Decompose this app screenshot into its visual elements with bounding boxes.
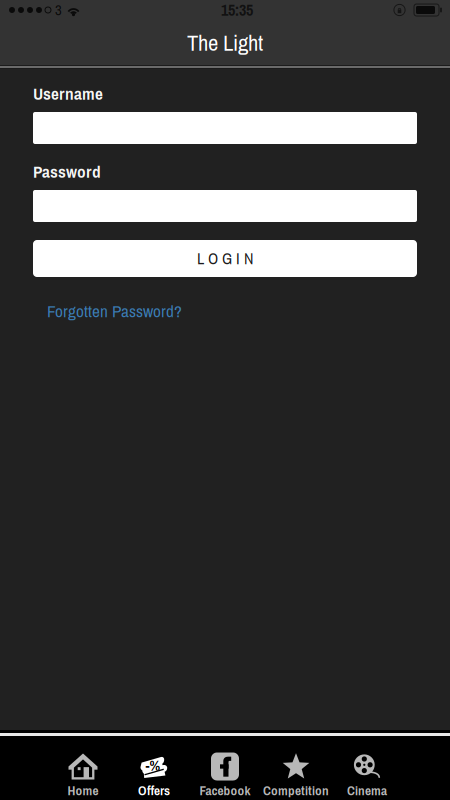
button[interactable]: Competition: [260, 736, 331, 800]
staticText: Username: [33, 82, 103, 105]
button[interactable]: Home: [47, 736, 118, 800]
staticText: Competition: [263, 781, 329, 799]
button[interactable]: Cinema: [331, 736, 402, 800]
staticText: Offers: [138, 781, 170, 799]
staticText: Forgotten Password?: [47, 299, 182, 323]
button[interactable]: Facebook: [189, 736, 260, 800]
staticText: Facebook: [199, 781, 250, 799]
staticText: The Light: [187, 27, 263, 58]
staticText: -%: [145, 756, 160, 775]
staticText: L O G I N: [197, 248, 253, 269]
button[interactable]: L O G I N: [33, 240, 417, 277]
staticText: Home: [67, 781, 98, 799]
staticText: 15:35: [221, 0, 253, 21]
staticText: 3: [55, 0, 62, 20]
button[interactable]: Forgotten Password?: [33, 298, 182, 324]
button[interactable]: -%: [118, 736, 189, 800]
staticText: Password: [33, 160, 101, 183]
staticText: Cinema: [347, 781, 387, 799]
